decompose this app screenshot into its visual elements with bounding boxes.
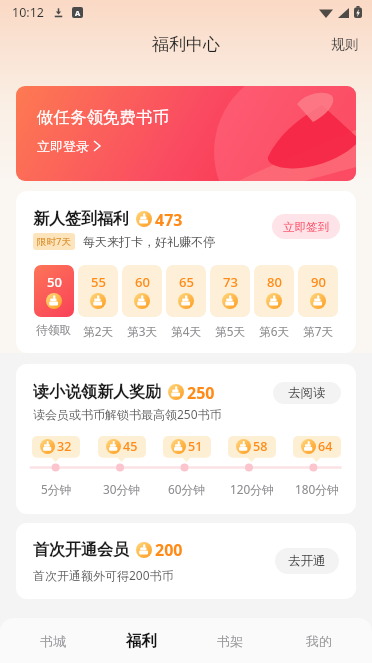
staticText: 58 (253, 438, 268, 455)
staticText: 60 (135, 273, 150, 291)
staticText: 60分钟 (168, 481, 206, 497)
staticText: 第7天 (303, 323, 334, 339)
button[interactable]: 规则 (317, 28, 372, 61)
button[interactable]: 去开通 (275, 548, 339, 574)
staticText: 473 (155, 209, 183, 228)
staticText: 做任务领免费书币 (37, 107, 169, 128)
button[interactable]: 60 (122, 265, 162, 317)
staticText: 90 (311, 273, 326, 291)
staticText: 120分钟 (230, 481, 274, 497)
staticText: 每天来打卡，好礼赚不停 (83, 234, 215, 249)
staticText: 福利中心 (152, 34, 220, 55)
staticText: 读会员或书币解锁书最高领250书币 (33, 406, 222, 422)
staticText: 去开通 (288, 553, 326, 569)
button[interactable]: 立即签到 (272, 214, 340, 239)
staticText: 首次开通额外可得200书币 (33, 567, 174, 583)
staticText: 待领取 (36, 323, 72, 338)
staticText: 50 (47, 273, 62, 291)
button[interactable]: 90 (298, 265, 338, 317)
button[interactable]: 做任务领免费书币 (16, 86, 356, 181)
staticText: 55 (91, 273, 106, 291)
staticText: 我的 (306, 633, 332, 649)
staticText: 30分钟 (103, 481, 141, 497)
staticText: 73 (223, 273, 238, 291)
staticText: 书架 (217, 633, 243, 649)
button[interactable]: 书架 (185, 618, 274, 663)
staticText: 第3天 (127, 323, 158, 339)
staticText: 250 (187, 382, 215, 401)
button[interactable]: 书城 (9, 618, 97, 663)
staticText: 福利 (126, 631, 157, 651)
staticText: 新人签到福利 (33, 209, 129, 228)
staticText: 51 (188, 438, 203, 455)
staticText: 立即登录 (37, 138, 89, 154)
staticText: 64 (318, 438, 333, 455)
staticText: 第5天 (215, 323, 246, 339)
button[interactable]: 福利 (97, 618, 185, 663)
staticText: 65 (179, 273, 194, 291)
staticText: 200 (155, 539, 183, 561)
staticText: 去阅读 (288, 385, 326, 401)
staticText: 第2天 (83, 323, 114, 339)
staticText: 首次开通会员 (33, 540, 129, 560)
button[interactable]: 去阅读 (273, 382, 341, 404)
staticText: 10:12 (12, 4, 44, 21)
button[interactable]: 80 (254, 265, 294, 317)
button[interactable]: 55 (78, 265, 118, 317)
staticText: 规则 (331, 36, 358, 53)
staticText: 书城 (40, 633, 66, 649)
staticText: 读小说领新人奖励 (33, 382, 161, 401)
button[interactable]: 我的 (274, 618, 363, 663)
staticText: A (75, 8, 81, 18)
staticText: 限时7天 (37, 235, 71, 248)
button[interactable]: 65 (166, 265, 206, 317)
staticText: 80 (267, 273, 282, 291)
staticText: 45 (123, 438, 138, 455)
staticText: 180分钟 (295, 481, 339, 497)
staticText: 第6天 (259, 323, 290, 339)
button[interactable]: 50 (34, 265, 74, 317)
staticText: 第4天 (171, 323, 202, 339)
button[interactable]: 73 (210, 265, 250, 317)
staticText: 5分钟 (41, 481, 72, 497)
staticText: 32 (57, 438, 72, 455)
staticText: 立即签到 (283, 220, 329, 234)
